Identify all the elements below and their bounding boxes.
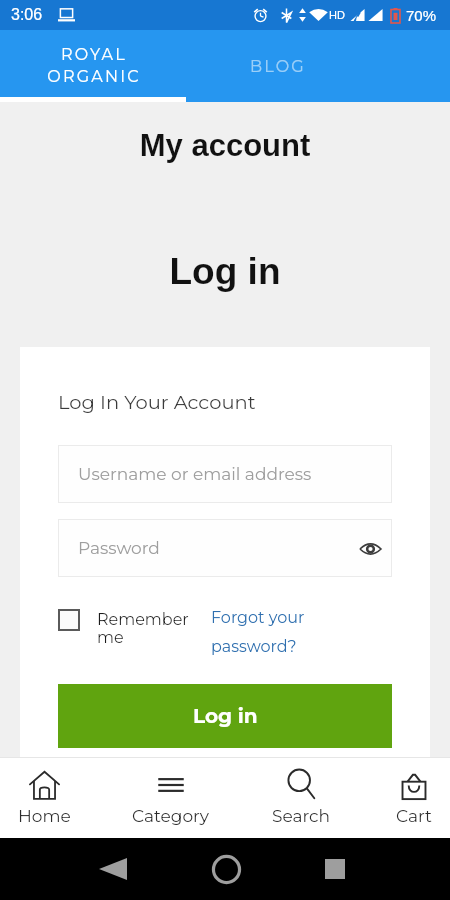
staticText: Search <box>272 806 331 827</box>
staticText: Home <box>18 806 71 827</box>
staticText: Category <box>132 806 210 827</box>
staticText: My account <box>0 128 450 163</box>
staticText: BLOG <box>250 57 306 77</box>
other: Home <box>212 855 241 884</box>
other: Back <box>99 857 127 881</box>
staticText: Log in <box>193 704 258 728</box>
staticText: Cart <box>396 806 432 827</box>
button[interactable]: Log in <box>58 684 392 748</box>
button[interactable]: Forgot your password? <box>211 608 321 656</box>
button[interactable]: Username or email address <box>58 445 392 503</box>
other: Show password <box>360 542 381 556</box>
staticText: 70% <box>406 7 437 24</box>
staticText: Password <box>78 538 160 559</box>
staticText: 3:06 <box>11 6 43 24</box>
button[interactable]: BLOG <box>188 30 368 97</box>
staticText: Log In Your Account <box>58 390 256 414</box>
button[interactable]: Search <box>250 758 353 838</box>
button[interactable]: Remember me <box>58 608 192 645</box>
button[interactable]: Category <box>116 758 226 838</box>
button[interactable]: ROYAL ORGANIC <box>0 30 188 97</box>
button[interactable]: Home <box>0 758 89 838</box>
staticText: Log in <box>0 251 450 292</box>
staticText: HD <box>329 9 345 21</box>
button[interactable]: Password <box>58 519 392 577</box>
staticText: Username or email address <box>78 464 312 485</box>
staticText: ROYAL ORGANIC <box>47 45 141 86</box>
staticText: Remember me <box>97 610 192 647</box>
button[interactable]: Cart <box>368 758 450 838</box>
